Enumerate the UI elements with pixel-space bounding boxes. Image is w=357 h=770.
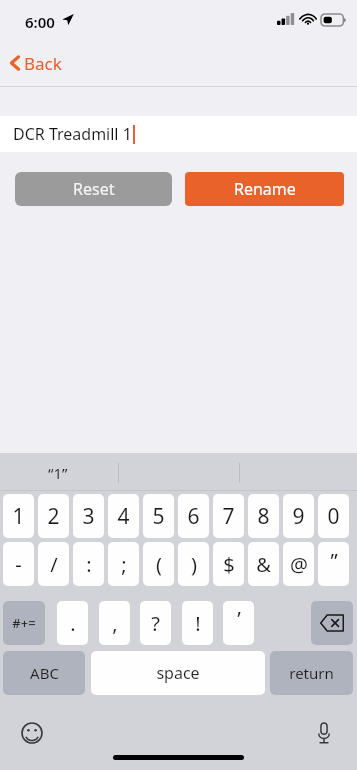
staticText: 2 — [47, 502, 60, 531]
staticText: 6:00 — [25, 12, 55, 32]
button[interactable]: 3 — [73, 494, 104, 538]
staticText: ” — [330, 547, 338, 574]
staticText: @ — [290, 551, 308, 578]
staticText: #+= — [12, 614, 36, 632]
button[interactable]: Rename — [185, 172, 344, 206]
button[interactable]: Back — [6, 48, 62, 78]
staticText: ! — [195, 610, 201, 637]
staticText: 9 — [292, 502, 305, 531]
staticText: 4 — [117, 502, 130, 531]
button[interactable]: 2 — [38, 494, 69, 538]
button[interactable]: ! — [182, 601, 213, 645]
staticText: ; — [121, 551, 127, 578]
staticText: - — [15, 551, 22, 578]
button[interactable]: 6 — [178, 494, 209, 538]
staticText: ’ — [237, 605, 241, 632]
staticText: return — [289, 663, 334, 683]
button[interactable]: . — [57, 601, 88, 645]
staticText: Back — [24, 52, 62, 75]
staticText: , — [112, 610, 118, 637]
button[interactable]: 1 — [3, 494, 34, 538]
button[interactable]: ) — [178, 542, 209, 586]
button[interactable]: Dictation — [306, 715, 342, 751]
button[interactable]: $ — [213, 542, 244, 586]
staticText: 7 — [222, 502, 235, 531]
button[interactable]: 5 — [143, 494, 174, 538]
button[interactable]: DCR Treadmill 1 — [0, 116, 357, 152]
button[interactable]: ; — [108, 542, 139, 586]
staticText: / — [50, 551, 58, 578]
button[interactable]: ” — [318, 542, 349, 586]
button[interactable]: space — [91, 651, 265, 695]
staticText: ? — [151, 610, 160, 637]
staticText: space — [156, 662, 200, 684]
button[interactable]: 0 — [318, 494, 349, 538]
staticText: : — [86, 551, 92, 578]
staticText: Rename — [234, 178, 296, 200]
button[interactable]: - — [3, 542, 34, 586]
staticText: Reset — [73, 178, 115, 200]
button[interactable]: ABC — [3, 651, 85, 695]
staticText: 1 — [12, 502, 25, 531]
staticText: 0 — [327, 502, 340, 531]
button[interactable]: return — [270, 651, 353, 695]
button[interactable]: 7 — [213, 494, 244, 538]
button[interactable]: ? — [140, 601, 171, 645]
staticText: ABC — [30, 663, 59, 683]
button[interactable]: , — [99, 601, 130, 645]
button[interactable]: 4 — [108, 494, 139, 538]
button[interactable]: Reset — [15, 172, 172, 206]
button[interactable]: 9 — [283, 494, 314, 538]
staticText: $ — [223, 551, 235, 578]
button[interactable]: #+= — [3, 601, 45, 645]
staticText: 6 — [187, 502, 200, 531]
staticText: 8 — [257, 502, 270, 531]
button[interactable]: 8 — [248, 494, 279, 538]
staticText: ) — [191, 551, 197, 578]
staticText: ( — [156, 551, 162, 578]
staticText: DCR Treadmill 1 — [13, 123, 132, 145]
button[interactable]: / — [38, 542, 69, 586]
button[interactable]: Emoji keyboard — [14, 715, 50, 751]
staticText: . — [70, 610, 76, 637]
staticText: 3 — [82, 502, 95, 531]
button[interactable]: ( — [143, 542, 174, 586]
button[interactable]: @ — [283, 542, 314, 586]
button[interactable]: : — [73, 542, 104, 586]
staticText: & — [256, 551, 271, 578]
staticText: 5 — [152, 502, 165, 531]
button[interactable]: “1” — [48, 463, 68, 483]
button[interactable]: Backspace — [311, 601, 353, 645]
button[interactable]: & — [248, 542, 279, 586]
button[interactable]: ’ — [223, 601, 254, 645]
